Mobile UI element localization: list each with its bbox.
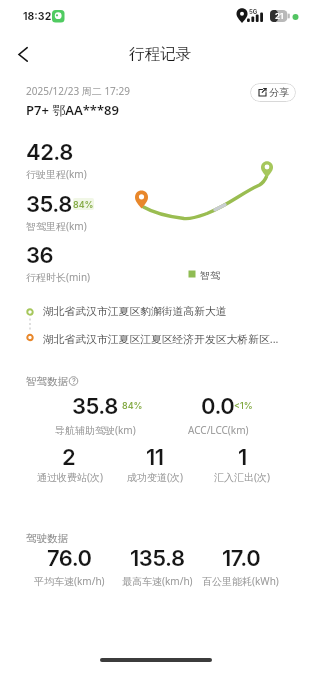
staticText: 通过收费站(次) xyxy=(37,470,103,484)
staticText: ? xyxy=(72,377,76,385)
staticText: 1 xyxy=(238,444,247,471)
staticText: <1% xyxy=(234,400,253,411)
staticText: 35.8 xyxy=(26,191,72,218)
staticText: 平均车速(km/h) xyxy=(34,574,105,588)
staticText: 分享 xyxy=(269,86,289,99)
staticText: 行驶里程(km) xyxy=(26,167,87,181)
staticText: 11 xyxy=(146,444,164,471)
staticText: 36 xyxy=(26,242,54,269)
staticText: 湖北省武汉市江夏区江夏区经济开发区大桥新区... xyxy=(43,331,279,346)
staticText: 行程记录 xyxy=(129,44,191,64)
button[interactable] xyxy=(10,42,34,66)
staticText: 35.8 xyxy=(72,393,118,420)
staticText: 汇入汇出(次) xyxy=(214,470,270,484)
staticText: 百公里能耗(kWh) xyxy=(202,574,279,588)
staticText: 84% xyxy=(73,199,94,210)
staticText: 智驾里程(km) xyxy=(26,219,87,233)
staticText: 最高车速(km/h) xyxy=(122,574,193,588)
staticText: 18:32 xyxy=(23,10,52,23)
staticText: 42.8 xyxy=(26,139,73,166)
staticText: 智驾 xyxy=(200,269,220,282)
staticText: P7+ 鄂AA***89 xyxy=(26,101,119,119)
staticText: 0.0 xyxy=(201,393,235,420)
staticText: 成功变道(次) xyxy=(127,470,183,484)
staticText: 2 xyxy=(62,444,76,471)
staticText: 湖北省武汉市江夏区豹澥街道高新大道 xyxy=(43,305,227,319)
staticText: 135.8 xyxy=(130,545,185,572)
staticText: 驾驶数据 xyxy=(26,532,68,545)
staticText: 17.0 xyxy=(222,545,261,572)
staticText: 5G xyxy=(249,8,258,15)
staticText: 导航辅助驾驶(km) xyxy=(55,423,136,437)
button[interactable] xyxy=(20,329,292,346)
staticText: 21 xyxy=(275,11,284,21)
staticText: ACC/LCC(km) xyxy=(188,423,249,437)
staticText: 智驾数据 xyxy=(26,375,68,388)
staticText: 84% xyxy=(122,400,143,411)
button[interactable] xyxy=(20,303,292,320)
staticText: 行程时长(min) xyxy=(26,270,91,284)
staticText: 76.0 xyxy=(47,545,92,572)
staticText: 2025/12/23 周二 17:29 xyxy=(26,84,130,98)
button[interactable]: 分享 xyxy=(250,83,296,102)
